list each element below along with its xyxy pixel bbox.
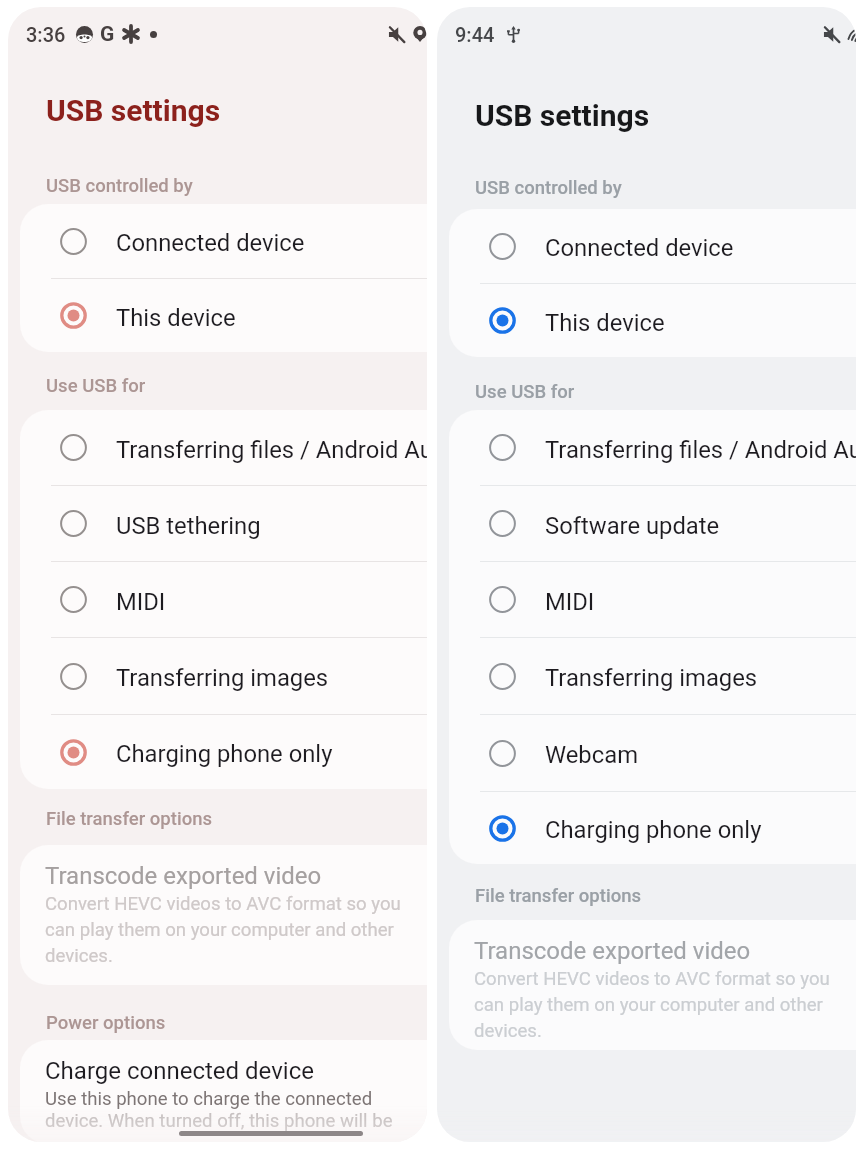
- staticText: device. When turned off, this phone will…: [45, 1110, 393, 1132]
- staticText: Use USB for: [475, 381, 575, 403]
- button[interactable]: Transcode exported video: [449, 920, 856, 1050]
- button[interactable]: Connected device: [449, 209, 856, 283]
- other: Silent mode: [823, 25, 842, 44]
- other: Notification: [123, 26, 139, 42]
- other: USB connected: [505, 26, 522, 43]
- staticText: Power options: [46, 1012, 166, 1034]
- staticText: This device: [116, 304, 236, 332]
- staticText: Use USB for: [46, 375, 146, 397]
- staticText: Connected device: [116, 229, 305, 257]
- button[interactable]: This device: [449, 284, 856, 357]
- staticText: Software update: [545, 512, 720, 540]
- staticText: MIDI: [545, 588, 595, 616]
- staticText: USB settings: [46, 93, 221, 128]
- staticText: USB tethering: [116, 512, 261, 540]
- staticText: Transferring files / Android Auto: [545, 436, 856, 464]
- staticText: Charging phone only: [116, 740, 333, 768]
- staticText: 9:44: [455, 23, 495, 46]
- staticText: USB controlled by: [475, 177, 622, 199]
- staticText: USB controlled by: [46, 175, 193, 197]
- button[interactable]: Transferring images: [20, 638, 427, 714]
- button[interactable]: Webcam: [449, 715, 856, 791]
- staticText: 3:36: [26, 23, 66, 46]
- button[interactable]: USB tethering: [20, 486, 427, 561]
- button[interactable]: This device: [20, 279, 427, 352]
- button[interactable]: Software update: [449, 486, 856, 561]
- staticText: Use this phone to charge the connected: [45, 1088, 373, 1110]
- other: Silent mode: [388, 25, 407, 44]
- other: Wi-Fi: [848, 26, 856, 43]
- staticText: Transferring images: [545, 664, 758, 692]
- staticText: Connected device: [545, 234, 734, 262]
- staticText: Charging phone only: [545, 816, 762, 844]
- staticText: Webcam: [545, 741, 639, 769]
- staticText: Charge connected device: [45, 1057, 314, 1085]
- other: Account avatar: [76, 26, 93, 43]
- button[interactable]: Transferring files / Android Auto: [20, 410, 427, 485]
- staticText: Transferring images: [116, 664, 329, 692]
- staticText: G: [100, 22, 115, 46]
- staticText: MIDI: [116, 588, 166, 616]
- staticText: File transfer options: [475, 885, 642, 907]
- other: Location: [412, 26, 427, 42]
- button[interactable]: Connected device: [20, 204, 427, 278]
- button[interactable]: Charging phone only: [20, 715, 427, 789]
- staticText: File transfer options: [46, 808, 213, 830]
- staticText: This device: [545, 309, 665, 337]
- button[interactable]: Charging phone only: [449, 792, 856, 864]
- staticText: Convert HEVC videos to AVC format so you…: [45, 893, 405, 967]
- button[interactable]: Transferring images: [449, 638, 856, 714]
- staticText: Transferring files / Android Auto: [116, 436, 427, 464]
- staticText: Transcode exported video: [474, 937, 751, 965]
- button[interactable]: Transcode exported video: [20, 845, 427, 985]
- button[interactable]: Charge connected device: [20, 1040, 427, 1142]
- staticText: Transcode exported video: [45, 862, 322, 890]
- button[interactable]: MIDI: [20, 562, 427, 637]
- button[interactable]: Transferring files / Android Auto: [449, 410, 856, 485]
- button[interactable]: MIDI: [449, 562, 856, 637]
- staticText: USB settings: [475, 98, 650, 133]
- staticText: Convert HEVC videos to AVC format so you…: [474, 968, 834, 1042]
